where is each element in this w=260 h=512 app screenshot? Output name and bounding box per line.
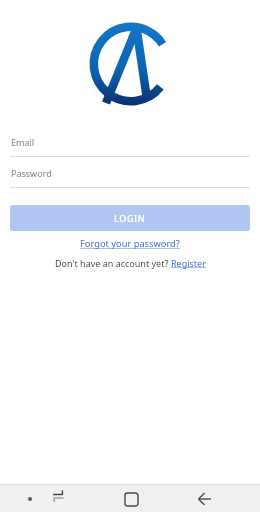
staticText: Register [171,257,206,269]
staticText: Don't have an account yet? [55,257,171,269]
button[interactable]: Register [171,257,206,269]
button[interactable] [194,488,216,510]
button[interactable]: LOGIN [10,205,250,231]
staticText: Forgot your password? [80,237,180,250]
staticText: Email [11,136,35,148]
staticText: Password [11,167,52,179]
button[interactable]: Password [10,161,250,188]
button[interactable] [47,487,69,509]
button[interactable] [121,488,142,509]
button[interactable]: Forgot your password? [76,235,184,252]
button[interactable]: Email [10,130,250,157]
button[interactable] [21,490,39,508]
staticText: LOGIN [114,212,146,224]
